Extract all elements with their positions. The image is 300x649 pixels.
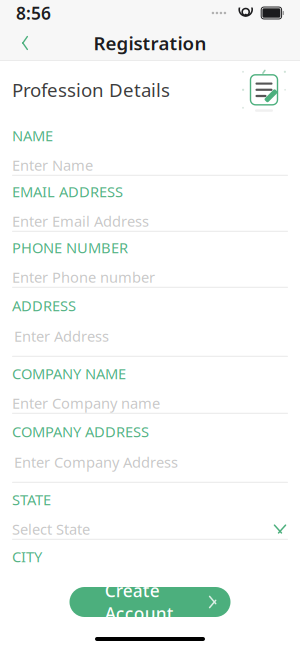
staticText: COMPANY ADDRESS xyxy=(12,422,149,441)
staticText: Enter Company name xyxy=(12,393,160,413)
staticText: Enter Address xyxy=(14,326,109,346)
staticText: ADDRESS xyxy=(12,296,76,315)
button[interactable]: NAME xyxy=(0,119,300,175)
staticText: EMAIL ADDRESS xyxy=(12,182,123,201)
button[interactable]: COMPANY ADDRESS xyxy=(0,413,300,483)
button[interactable]: PHONE NUMBER xyxy=(0,231,300,287)
staticText: 8:56 xyxy=(16,1,51,24)
staticText: Select State xyxy=(12,519,90,539)
staticText: Enter Phone number xyxy=(12,267,155,287)
staticText: STATE xyxy=(12,490,51,509)
button[interactable]: EMAIL ADDRESS xyxy=(0,175,300,231)
button[interactable]: Create Account xyxy=(69,587,230,617)
button[interactable]: STATE xyxy=(0,483,300,539)
staticText: NAME xyxy=(12,126,53,145)
button[interactable]: Back xyxy=(8,26,42,60)
staticText: Enter Email Address xyxy=(12,211,149,231)
button[interactable]: COMPANY NAME xyxy=(0,357,300,413)
staticText: Profession Details xyxy=(12,77,170,102)
staticText: CITY xyxy=(12,547,42,566)
staticText: Enter Name xyxy=(12,155,93,175)
staticText: PHONE NUMBER xyxy=(12,238,128,257)
staticText: Create Account xyxy=(105,579,174,625)
button[interactable]: ADDRESS xyxy=(0,287,300,357)
staticText: Enter Company Address xyxy=(14,452,178,472)
staticText: COMPANY NAME xyxy=(12,364,126,383)
staticText: Registration xyxy=(93,31,206,55)
